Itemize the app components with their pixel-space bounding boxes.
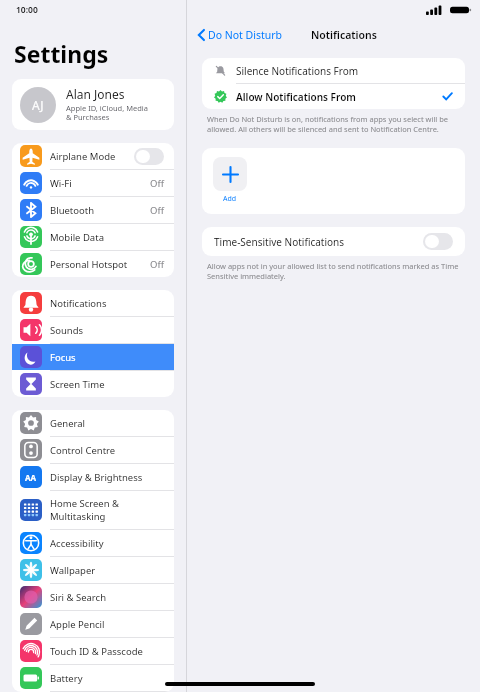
button[interactable]: Notifications — [12, 290, 174, 316]
button[interactable]: Battery — [12, 665, 174, 691]
button[interactable]: Accessibility — [12, 530, 174, 556]
button[interactable]: Bluetooth — [12, 197, 174, 223]
staticText: Screen Time — [50, 378, 105, 391]
button[interactable]: Apple Pencil — [12, 611, 174, 637]
staticText: Do Not Disturb — [208, 28, 283, 42]
staticText: Notifications — [50, 297, 107, 310]
staticText: Siri & Search — [50, 591, 107, 604]
staticText: Notifications — [311, 28, 377, 42]
button[interactable]: AJ — [12, 79, 174, 130]
button[interactable]: Add app — [213, 157, 247, 204]
staticText: Battery — [50, 672, 83, 685]
staticText: Apple ID, iCloud, Media & Purchases — [66, 103, 148, 123]
staticText: Wallpaper — [50, 564, 96, 577]
staticText: Allow apps not in your allowed list to s… — [207, 261, 459, 281]
button[interactable]: Mobile Data — [12, 224, 174, 250]
staticText: AJ — [32, 97, 44, 113]
button[interactable]: Siri & Search — [12, 584, 174, 610]
staticText: Focus — [50, 351, 76, 364]
button[interactable]: Silence Notifications From — [202, 58, 465, 83]
staticText: Add — [223, 194, 237, 204]
staticText: Settings — [14, 38, 109, 69]
button[interactable]: Touch ID & Passcode — [12, 638, 174, 664]
button[interactable]: Sounds — [12, 317, 174, 343]
staticText: 10:00 — [16, 4, 38, 16]
staticText: General — [50, 417, 86, 430]
button[interactable]: General — [12, 410, 174, 436]
staticText: Silence Notifications From — [236, 64, 359, 78]
staticText: Accessibility — [50, 537, 104, 550]
button[interactable]: Airplane Mode toggle — [134, 148, 164, 165]
button[interactable]: Time-Sensitive Notifications — [202, 227, 465, 256]
button[interactable]: Home Screen & Multitasking — [12, 491, 174, 529]
button[interactable]: Wallpaper — [12, 557, 174, 583]
staticText: Apple Pencil — [50, 618, 105, 631]
staticText: Touch ID & Passcode — [50, 645, 143, 658]
button[interactable]: Personal Hotspot — [12, 251, 174, 277]
staticText: Mobile Data — [50, 231, 104, 244]
staticText: Time-Sensitive Notifications — [214, 235, 423, 249]
staticText: Alan Jones — [66, 86, 125, 102]
staticText: Display & Brightness — [50, 471, 143, 484]
staticText: Off — [150, 177, 164, 190]
button[interactable]: Airplane Mode — [12, 143, 174, 169]
staticText: Control Centre — [50, 444, 116, 457]
staticText: Off — [150, 204, 164, 217]
staticText: Off — [150, 258, 164, 271]
staticText: AA — [25, 472, 37, 483]
button[interactable]: Control Centre — [12, 437, 174, 463]
button[interactable]: Do Not Disturb — [195, 26, 286, 44]
staticText: Bluetooth — [50, 204, 95, 217]
button[interactable]: AA — [12, 464, 174, 490]
button[interactable]: Focus — [12, 344, 174, 370]
staticText: Personal Hotspot — [50, 258, 128, 271]
button[interactable]: Screen Time — [12, 371, 174, 397]
staticText: Home Screen & Multitasking — [50, 497, 120, 523]
staticText: Sounds — [50, 324, 84, 337]
button[interactable]: Wi-Fi — [12, 170, 174, 196]
button[interactable]: Allow Notifications From — [202, 84, 465, 109]
staticText: When Do Not Disturb is on, notifications… — [207, 114, 449, 134]
staticText: Allow Notifications From — [236, 90, 442, 104]
staticText: Wi-Fi — [50, 177, 72, 190]
staticText: Airplane Mode — [50, 150, 116, 163]
